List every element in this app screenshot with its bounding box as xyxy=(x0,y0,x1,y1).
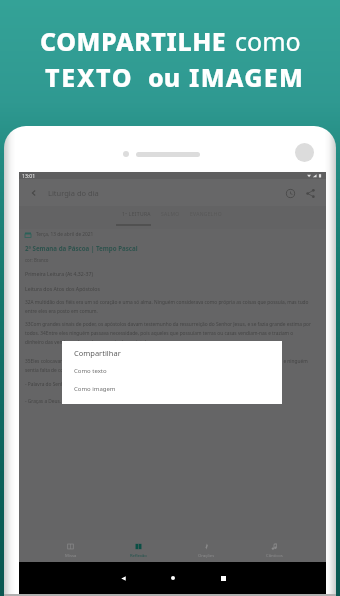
staticText: Leitura dos Atos dos Apóstolos xyxy=(25,285,100,292)
staticText: 13:01 xyxy=(22,172,36,179)
button[interactable]: 1ª LEITURA xyxy=(122,211,151,218)
staticText: IMAGEM xyxy=(189,60,305,94)
button[interactable]: Cânticos xyxy=(240,543,308,559)
button[interactable]: Histórico xyxy=(283,186,297,200)
staticText: Cânticos xyxy=(266,553,283,559)
staticText: Terça, 13 de abril de 2021 xyxy=(36,231,94,238)
button[interactable]: Orações xyxy=(172,543,240,559)
staticText: Missa xyxy=(65,553,77,559)
button[interactable]: Reflexão xyxy=(104,543,172,559)
button[interactable]: Voltar xyxy=(27,186,41,200)
button[interactable]: Como imagem xyxy=(62,380,282,398)
staticText: Primeira Leitura (At 4,32-37) xyxy=(25,270,93,277)
staticText: cor: Branco xyxy=(25,257,49,263)
staticText: Como imagem xyxy=(74,385,116,393)
staticText: Orações xyxy=(198,553,215,559)
staticText: como xyxy=(235,24,301,58)
staticText: COMPARTILHE xyxy=(40,24,227,58)
staticText: 33Com grandes sinais de poder, os apósto… xyxy=(25,321,312,345)
staticText: 35Eles colocavam aos pés dos apóstolos e… xyxy=(25,358,312,373)
staticText: - Graças a Deus. xyxy=(25,398,62,405)
staticText: Como texto xyxy=(74,367,107,375)
staticText: - Palavra do Senhor. xyxy=(25,381,70,388)
staticText: 32A multidão dos fiéis era um só coração… xyxy=(25,299,312,314)
button[interactable]: Início xyxy=(165,570,181,586)
button[interactable]: Missa xyxy=(37,543,104,559)
staticText: TEXTO xyxy=(45,60,134,94)
button[interactable]: Compartilhar xyxy=(303,186,317,200)
staticText: Compartilhar xyxy=(74,348,121,358)
staticText: Reflexão xyxy=(130,553,147,559)
button[interactable]: Voltar xyxy=(115,570,131,586)
staticText: Liturgia do dia xyxy=(48,188,99,198)
staticText: ou xyxy=(148,60,181,94)
button[interactable]: Recentes xyxy=(215,570,231,586)
staticText: 2ª Semana da Páscoa | Tempo Pascal xyxy=(25,244,138,252)
button[interactable]: Como texto xyxy=(62,362,282,380)
